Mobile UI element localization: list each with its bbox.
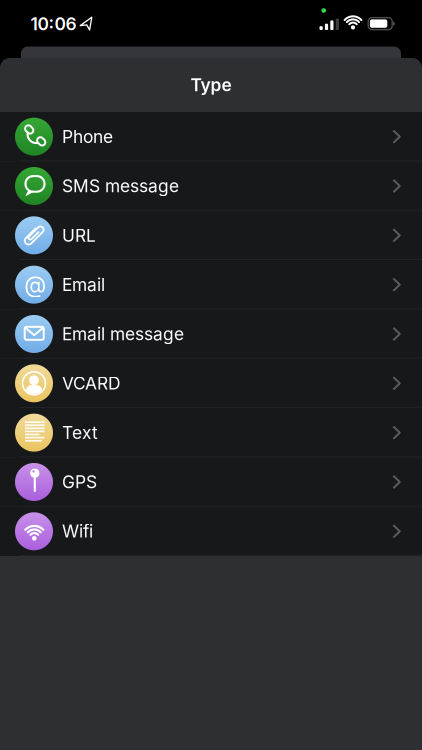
button[interactable]: @: [0, 260, 422, 309]
staticText: Wifi: [62, 521, 93, 541]
button[interactable]: Phone: [0, 112, 422, 161]
button[interactable]: Email message: [0, 309, 422, 359]
staticText: Type: [190, 75, 231, 95]
staticText: URL: [62, 225, 96, 245]
button[interactable]: URL: [0, 211, 422, 260]
button[interactable]: Text: [0, 408, 422, 457]
staticText: VCARD: [62, 373, 121, 393]
button[interactable]: SMS message: [0, 161, 422, 211]
staticText: @: [24, 271, 46, 297]
button[interactable]: Wifi: [0, 507, 422, 556]
button[interactable]: GPS: [0, 457, 422, 507]
staticText: Email message: [62, 324, 184, 344]
staticText: SMS message: [62, 176, 179, 196]
staticText: GPS: [62, 472, 97, 492]
staticText: Phone: [62, 126, 113, 147]
button[interactable]: VCARD: [0, 359, 422, 408]
staticText: Email: [62, 274, 105, 295]
staticText: Text: [62, 422, 98, 443]
staticText: 10:06: [30, 14, 76, 34]
